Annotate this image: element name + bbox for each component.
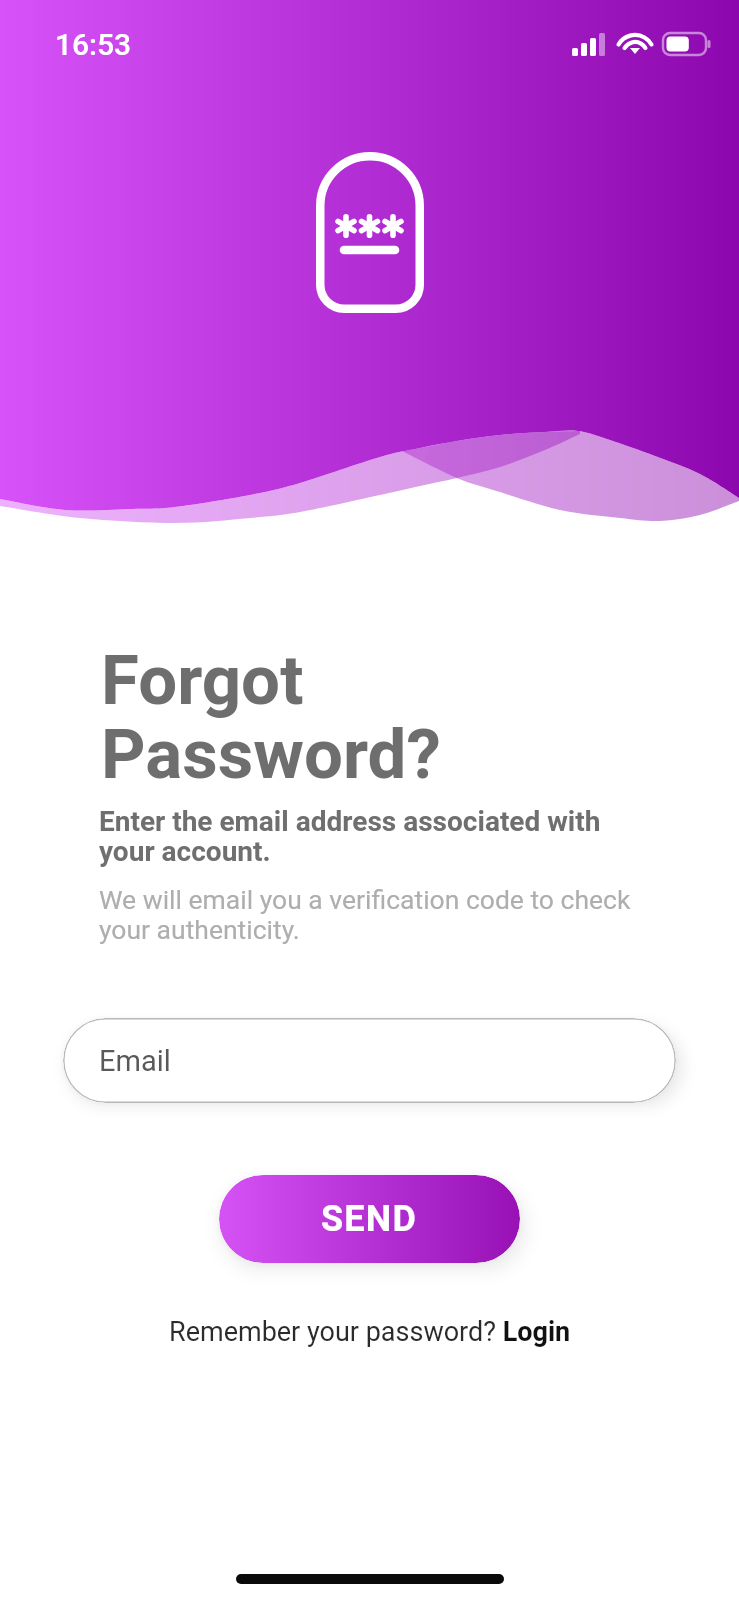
- button[interactable]: SEND: [219, 1175, 520, 1263]
- staticText: Remember your password? Login: [169, 1316, 571, 1348]
- staticText: Enter the email address associated with …: [99, 805, 601, 868]
- staticText: Email: [99, 1044, 171, 1078]
- button[interactable]: Email: [63, 1018, 676, 1103]
- staticText: 16:53: [55, 27, 132, 62]
- staticText: Forgot Password?: [101, 640, 441, 794]
- staticText: We will email you a verification code to…: [99, 884, 631, 945]
- button[interactable]: Remember your password? Login: [169, 1316, 571, 1348]
- staticText: SEND: [321, 1198, 418, 1240]
